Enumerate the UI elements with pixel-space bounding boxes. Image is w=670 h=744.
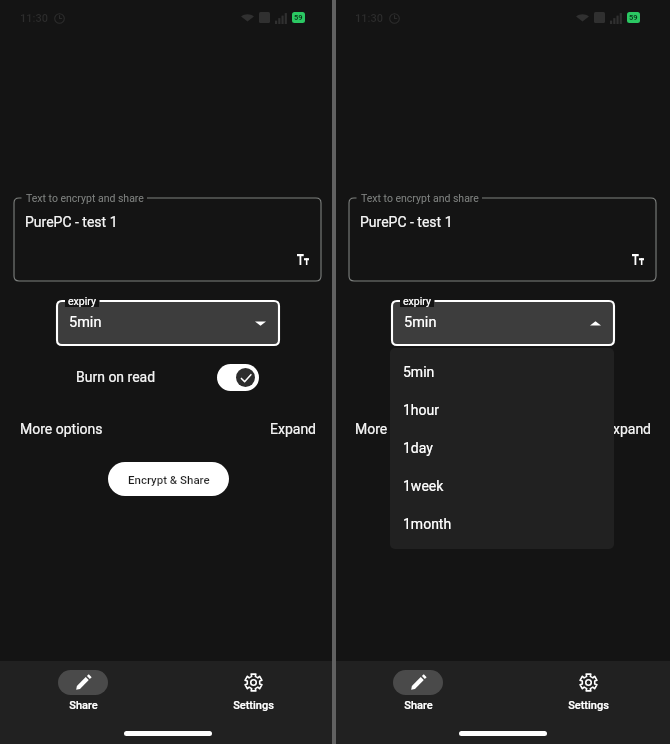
- staticText: Text to encrypt and share: [26, 192, 144, 204]
- staticText: 59: [294, 13, 303, 22]
- other: Text formatting: [632, 254, 644, 265]
- staticText: 11:30: [355, 12, 383, 25]
- staticText: 11:30: [20, 12, 48, 25]
- button[interactable]: Text to encrypt and share: [349, 198, 656, 281]
- button[interactable]: 1week: [390, 467, 614, 505]
- button[interactable]: Share: [368, 670, 468, 712]
- staticText: Text to encrypt and share: [361, 192, 479, 204]
- button[interactable]: 1day: [390, 429, 614, 467]
- button[interactable]: 1hour: [390, 391, 614, 429]
- staticText: 59: [629, 13, 638, 22]
- button[interactable]: Expand: [605, 421, 652, 437]
- staticText: Settings: [233, 699, 274, 712]
- button[interactable]: 5min: [390, 353, 614, 391]
- button[interactable]: Share: [33, 670, 133, 712]
- button[interactable]: Settings: [538, 670, 638, 712]
- staticText: 5min: [404, 314, 437, 331]
- button[interactable]: expiry: [57, 301, 279, 345]
- button[interactable]: Burn on read toggle: [217, 364, 259, 391]
- other: Text formatting: [297, 254, 309, 265]
- button[interactable]: 1month: [390, 505, 614, 543]
- button[interactable]: More options: [20, 421, 103, 437]
- staticText: 1day: [403, 440, 433, 456]
- staticText: Share: [404, 699, 433, 712]
- staticText: 1week: [403, 478, 444, 494]
- staticText: Share: [69, 699, 98, 712]
- staticText: Burn on read: [76, 369, 156, 385]
- staticText: Settings: [568, 699, 609, 712]
- button[interactable]: Text to encrypt and share: [14, 198, 321, 281]
- staticText: PurePC - test 1: [25, 214, 118, 230]
- button[interactable]: expiry: [392, 301, 614, 345]
- button[interactable]: Settings: [203, 670, 303, 712]
- button[interactable]: More options: [355, 421, 438, 437]
- staticText: expiry: [403, 295, 431, 307]
- staticText: PurePC - test 1: [360, 214, 453, 230]
- staticText: 5min: [69, 314, 102, 331]
- staticText: Encrypt & Share: [128, 473, 210, 486]
- staticText: 5min: [403, 364, 435, 380]
- button[interactable]: Encrypt & Share: [108, 462, 229, 496]
- staticText: expiry: [68, 295, 96, 307]
- staticText: 1hour: [403, 402, 440, 418]
- button[interactable]: Expand: [270, 421, 317, 437]
- staticText: 1month: [403, 516, 452, 532]
